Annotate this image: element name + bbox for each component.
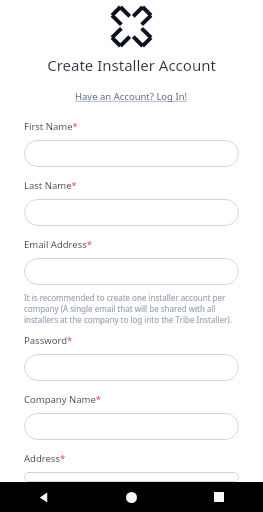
- staticText: First Name*: [24, 120, 78, 133]
- staticText: Have an Account? Log In!: [75, 90, 188, 103]
- staticText: Password*: [24, 334, 73, 347]
- staticText: Last Name*: [24, 179, 77, 192]
- staticText: Company Name*: [24, 393, 102, 406]
- staticText: Email Address*: [24, 238, 93, 251]
- button[interactable]: Back: [0, 482, 87, 512]
- button[interactable]: Recent apps: [175, 482, 263, 512]
- button[interactable]: [24, 413, 239, 440]
- button[interactable]: [24, 472, 239, 482]
- button[interactable]: [24, 140, 239, 167]
- button[interactable]: Have an Account? Log In!: [71, 88, 192, 105]
- button[interactable]: [24, 199, 239, 226]
- button[interactable]: [24, 354, 239, 381]
- staticText: It is recommended to create one installe…: [24, 292, 239, 325]
- staticText: Address*: [24, 452, 66, 465]
- button[interactable]: Home: [87, 482, 175, 512]
- staticText: Create Installer Account: [47, 55, 216, 75]
- button[interactable]: [24, 258, 239, 285]
